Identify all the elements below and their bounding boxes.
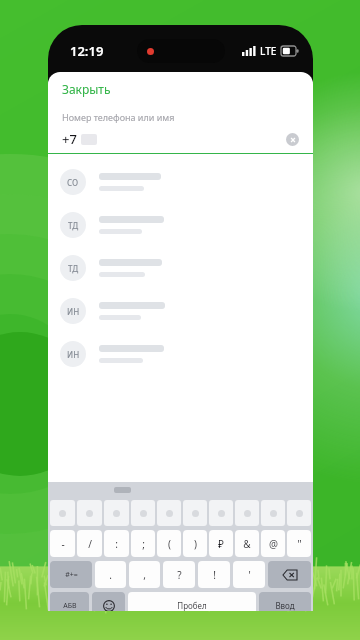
button[interactable]: ) (183, 530, 207, 557)
staticText: & (243, 537, 251, 551)
staticText: #+= (65, 570, 78, 580)
staticText: LTE (260, 44, 277, 58)
button[interactable]: ( (157, 530, 181, 557)
button[interactable]: Пробел (128, 592, 256, 611)
staticText: ИН (67, 306, 80, 317)
staticText: ' (248, 568, 251, 582)
button[interactable]: ; (131, 530, 155, 557)
staticText: 12:19 (70, 42, 104, 60)
staticText: ИН (67, 349, 80, 360)
button[interactable]: Цифра (104, 500, 129, 526)
staticText: @ (269, 537, 278, 551)
button[interactable]: Закрыть (48, 72, 313, 105)
staticText: " (297, 537, 302, 551)
staticText: ? (177, 568, 182, 582)
button[interactable]: " (287, 530, 311, 557)
staticText: Номер телефона или имя (62, 111, 175, 123)
button[interactable]: ТД (48, 203, 313, 246)
button[interactable]: ИН (48, 332, 313, 375)
button[interactable]: ! (198, 561, 230, 588)
button[interactable]: Цифра (50, 500, 75, 526)
staticText: / (88, 537, 92, 551)
button[interactable]: : (104, 530, 129, 557)
staticText: АБВ (63, 601, 77, 611)
button[interactable]: Цифра (209, 500, 233, 526)
staticText: ТД (68, 220, 79, 231)
button[interactable]: Эмодзи (92, 592, 125, 611)
button[interactable]: Цифра (131, 500, 155, 526)
button[interactable]: & (235, 530, 259, 557)
staticText: ( (168, 537, 171, 551)
staticText: - (61, 537, 65, 551)
staticText: ; (142, 537, 145, 551)
button[interactable]: Очистить (286, 133, 299, 146)
button[interactable]: Цифра (183, 500, 207, 526)
button[interactable]: СО (48, 160, 313, 203)
staticText: Закрыть (62, 81, 111, 97)
button[interactable]: Цифра (261, 500, 285, 526)
staticText: ) (194, 537, 197, 551)
staticText: Ввод (275, 600, 295, 611)
button[interactable]: . (95, 561, 126, 588)
staticText: ₽ (218, 537, 224, 551)
staticText: +7 (62, 130, 77, 148)
staticText: СО (67, 177, 79, 188)
button[interactable]: ' (233, 561, 265, 588)
button[interactable]: / (77, 530, 102, 557)
button[interactable]: ₽ (209, 530, 233, 557)
staticText: Пробел (177, 600, 207, 611)
staticText: , (143, 568, 146, 582)
button[interactable]: ? (163, 561, 195, 588)
button[interactable]: ТД (48, 246, 313, 289)
button[interactable]: Цифра (235, 500, 259, 526)
button[interactable]: @ (261, 530, 285, 557)
button[interactable]: Удалить (268, 561, 311, 588)
staticText: : (115, 537, 118, 551)
button[interactable]: Цифра (77, 500, 102, 526)
button[interactable]: Ввод (259, 592, 311, 611)
button[interactable]: ИН (48, 289, 313, 332)
button[interactable]: , (129, 561, 160, 588)
button[interactable]: АБВ (50, 592, 89, 611)
button[interactable]: Цифра (287, 500, 311, 526)
staticText: ! (213, 568, 216, 582)
button[interactable]: - (50, 530, 75, 557)
button[interactable]: Цифра (157, 500, 181, 526)
button[interactable]: #+= (50, 561, 92, 588)
staticText: . (109, 568, 112, 582)
staticText: ТД (68, 263, 79, 274)
